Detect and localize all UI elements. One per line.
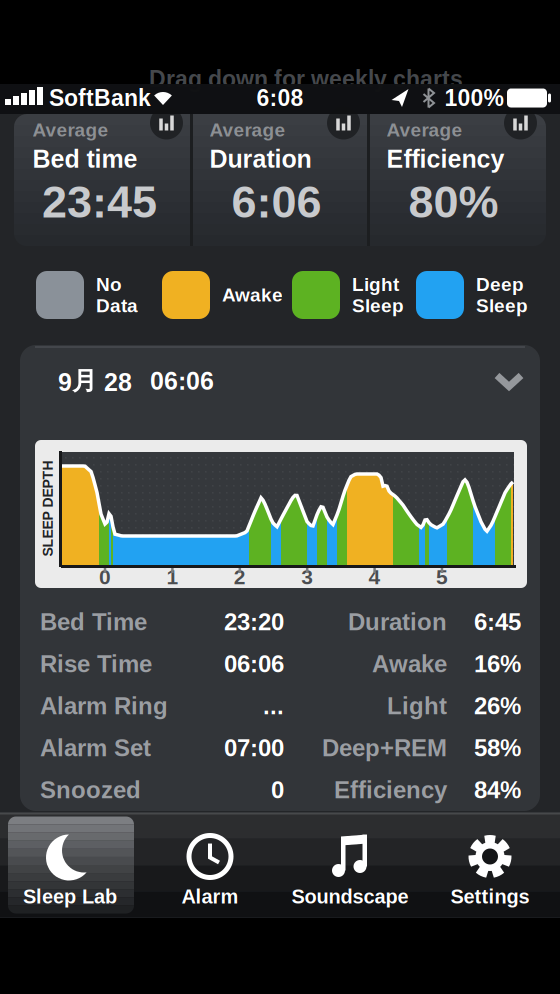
staticText: Alarm Ring (40, 693, 168, 719)
staticText: Sleep Lab (23, 885, 117, 908)
staticText: 2 (234, 565, 246, 589)
staticText: 9月 28 (58, 365, 132, 397)
staticText: SLEEP DEPTH (0, 501, 96, 516)
staticText: 0 (271, 777, 284, 803)
staticText: ... (263, 693, 284, 719)
staticText: Rise Time (40, 651, 152, 677)
staticText: Alarm (181, 885, 238, 908)
button[interactable]: Soundscape (280, 812, 420, 917)
staticText: 100% (444, 85, 503, 111)
staticText: Duration (348, 609, 447, 635)
staticText: Average (32, 119, 108, 141)
staticText: 58% (474, 735, 521, 761)
staticText: Deep+REM (322, 735, 447, 761)
staticText: Light (387, 693, 447, 719)
staticText: Drag down for weekly charts (149, 66, 463, 92)
button[interactable]: Average (191, 114, 368, 246)
staticText: Bed time (32, 145, 137, 173)
staticText: SoftBank (49, 85, 151, 111)
button[interactable]: Collapse day (496, 374, 522, 387)
staticText: Efficiency (334, 777, 447, 803)
staticText: 3 (301, 565, 313, 589)
button[interactable]: Average (14, 114, 191, 246)
staticText: 4 (369, 565, 381, 589)
staticText: Awake (222, 284, 283, 306)
button[interactable]: Sleep Lab (0, 812, 140, 917)
staticText: 06:06 (150, 367, 214, 395)
staticText: Duration (209, 145, 311, 173)
staticText: Average (209, 119, 285, 141)
staticText: 16% (474, 651, 521, 677)
staticText: 26% (474, 693, 521, 719)
staticText: Bed Time (40, 609, 147, 635)
staticText: Soundscape (291, 885, 408, 908)
staticText: 23:45 (42, 177, 157, 227)
staticText: 80% (408, 177, 498, 227)
staticText: 6:45 (474, 609, 521, 635)
staticText: Efficiency (386, 145, 504, 173)
staticText: Settings (450, 885, 529, 908)
button[interactable]: Alarm (140, 812, 280, 917)
staticText: Deep Sleep (476, 274, 528, 316)
button[interactable]: Settings (420, 812, 560, 917)
staticText: Light Sleep (352, 274, 404, 316)
staticText: 06:06 (224, 651, 284, 677)
staticText: 07:00 (224, 735, 284, 761)
staticText: Snoozed (40, 777, 141, 803)
staticText: 5 (436, 565, 448, 589)
staticText: No Data (96, 274, 138, 316)
staticText: Average (386, 119, 462, 141)
staticText: 0 (99, 565, 111, 589)
staticText: 84% (474, 777, 521, 803)
staticText: 23:20 (224, 609, 284, 635)
staticText: Alarm Set (40, 735, 151, 761)
staticText: 1 (166, 565, 178, 589)
button[interactable]: Average (368, 114, 545, 246)
staticText: 6:08 (256, 85, 303, 111)
staticText: 6:06 (231, 177, 321, 227)
staticText: Awake (372, 651, 447, 677)
